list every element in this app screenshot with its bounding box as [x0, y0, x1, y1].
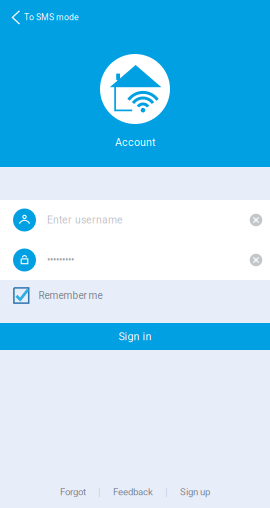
button[interactable]: Feedback — [113, 484, 153, 500]
staticText: Remember me — [39, 290, 103, 301]
button[interactable]: Remember me — [0, 287, 270, 304]
staticText: Enter username — [47, 214, 123, 226]
button[interactable]: Clear — [242, 240, 270, 280]
staticText: Forgot — [60, 486, 86, 498]
staticText: Sign in — [118, 330, 151, 343]
button[interactable]: Forgot — [60, 484, 86, 500]
button[interactable]: Sign up — [180, 484, 210, 500]
staticText: Account — [115, 136, 155, 148]
staticText: Feedback — [113, 486, 153, 498]
button[interactable]: To SMS mode — [0, 0, 79, 25]
button[interactable]: Sign in — [0, 323, 270, 350]
staticText: | — [165, 486, 168, 498]
staticText: Sign up — [180, 486, 210, 498]
button[interactable]: Clear — [242, 200, 270, 240]
staticText: | — [98, 486, 101, 498]
staticText: ••••••••• — [47, 254, 74, 266]
staticText: To SMS mode — [24, 12, 79, 22]
